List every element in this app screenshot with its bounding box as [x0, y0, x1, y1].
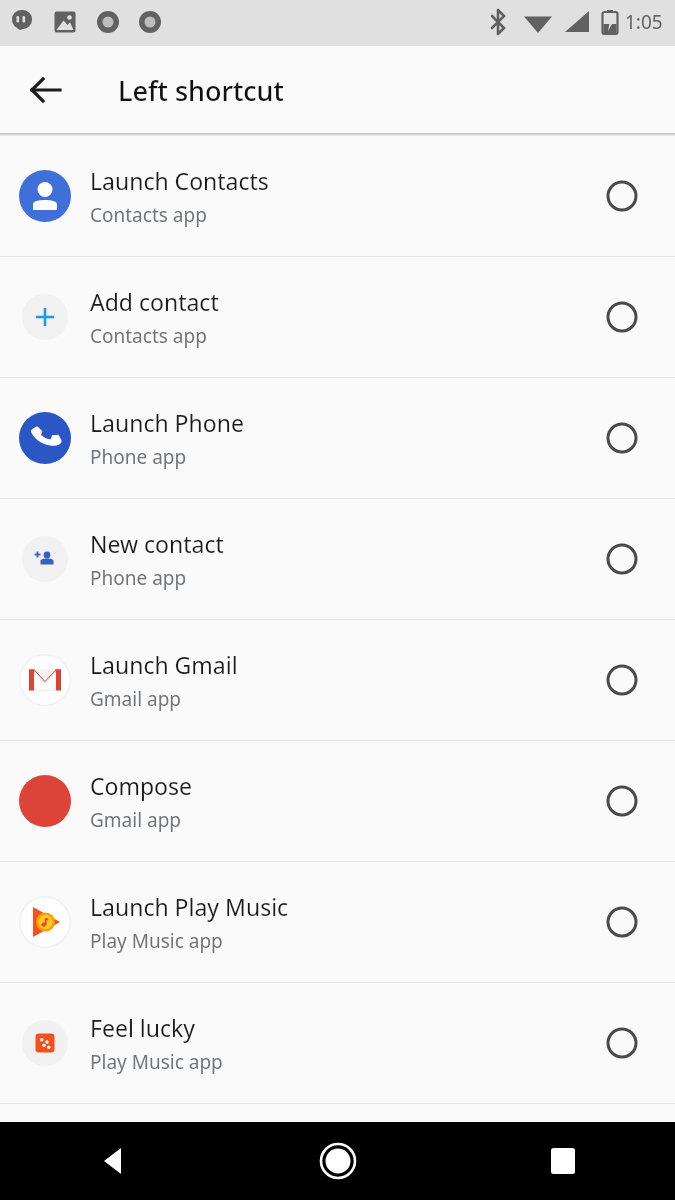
button[interactable]: Select Feel lucky: [569, 983, 675, 1103]
button[interactable]: Select Add contact: [569, 257, 675, 377]
button[interactable]: Home: [225, 1122, 450, 1200]
button[interactable]: Select Launch Phone: [569, 378, 675, 498]
button[interactable]: Select Compose: [569, 741, 675, 861]
staticText: Launch Phone: [90, 407, 244, 438]
button[interactable]: Feel lucky: [0, 983, 675, 1103]
staticText: Launch Play Music: [90, 891, 289, 922]
button[interactable]: Add contact: [0, 257, 675, 377]
button[interactable]: Back: [14, 58, 78, 122]
button[interactable]: Launch Gmail: [0, 620, 675, 740]
button[interactable]: Select Launch Gmail: [569, 620, 675, 740]
staticText: Play Music app: [90, 1049, 223, 1075]
button[interactable]: Launch Play Music: [0, 862, 675, 982]
staticText: Left shortcut: [118, 72, 284, 109]
staticText: Feel lucky: [90, 1012, 195, 1043]
staticText: Play Music app: [90, 928, 223, 954]
button[interactable]: Recents: [450, 1122, 675, 1200]
staticText: Add contact: [90, 286, 219, 317]
staticText: Launch Contacts: [90, 165, 269, 196]
button[interactable]: New contact: [0, 499, 675, 619]
staticText: Contacts app: [90, 323, 207, 349]
staticText: Phone app: [90, 565, 187, 591]
staticText: Compose: [90, 770, 193, 801]
staticText: Gmail app: [90, 686, 182, 712]
staticText: Phone app: [90, 444, 187, 470]
button[interactable]: Select New contact: [569, 499, 675, 619]
staticText: New contact: [90, 528, 224, 559]
button[interactable]: Compose: [0, 741, 675, 861]
button[interactable]: Select Launch Play Music: [569, 862, 675, 982]
staticText: Gmail app: [90, 807, 182, 833]
staticText: Contacts app: [90, 202, 207, 228]
button[interactable]: Back: [0, 1122, 225, 1200]
staticText: Launch Gmail: [90, 649, 238, 680]
staticText: 1:05: [625, 9, 663, 35]
button[interactable]: Select Launch Contacts: [569, 136, 675, 256]
button[interactable]: Launch Contacts: [0, 136, 675, 256]
button[interactable]: Launch Phone: [0, 378, 675, 498]
